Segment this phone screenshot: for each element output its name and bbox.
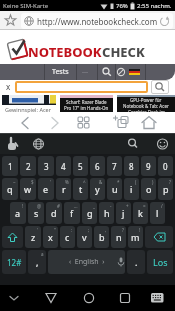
button[interactable]: 2 — [20, 156, 36, 176]
button[interactable] — [116, 64, 140, 80]
button[interactable]: 12# — [2, 250, 26, 274]
button[interactable] — [42, 288, 60, 308]
button[interactable]: 5 — [73, 156, 88, 176]
button[interactable]: y — [90, 178, 105, 200]
button[interactable]: o — [141, 178, 156, 200]
button[interactable]: g — [82, 202, 97, 224]
staticText: & — [99, 179, 103, 185]
button[interactable] — [98, 64, 115, 80]
button[interactable]: 3 — [38, 156, 54, 176]
button[interactable]: Gewinnspiel: Acer — [2, 95, 56, 112]
button[interactable] — [15, 81, 148, 93]
button[interactable] — [145, 226, 173, 248]
button[interactable]: m — [128, 226, 143, 248]
button[interactable] — [153, 134, 172, 154]
staticText: * — [117, 179, 120, 185]
staticText: # — [57, 203, 60, 209]
button[interactable]: q — [2, 178, 18, 200]
button[interactable]: t — [73, 178, 88, 200]
button[interactable] — [2, 134, 21, 154]
button[interactable]: r — [56, 178, 71, 200]
button[interactable]: f — [64, 202, 80, 224]
button[interactable]: , — [28, 250, 46, 274]
staticText: _ — [93, 203, 95, 209]
button[interactable] — [2, 226, 23, 248]
button[interactable] — [123, 134, 142, 154]
staticText: ) — [152, 179, 154, 185]
staticText: CHECK — [102, 43, 145, 61]
button[interactable]: 6 — [90, 156, 105, 176]
button[interactable]: j — [116, 202, 131, 224]
staticText: v — [82, 231, 87, 243]
staticText: = — [143, 203, 146, 209]
button[interactable] — [73, 113, 95, 133]
button[interactable]: 4 — [56, 156, 71, 176]
staticText: $ — [31, 179, 34, 185]
button[interactable]: l — [150, 202, 165, 224]
button[interactable] — [159, 16, 170, 27]
button[interactable] — [116, 288, 134, 308]
button[interactable]: p — [158, 178, 173, 200]
button[interactable] — [44, 113, 66, 133]
staticText: % — [65, 179, 69, 185]
button[interactable]: s — [28, 202, 44, 224]
staticText: Pro 17" im Hands-On — [64, 105, 109, 111]
staticText: , — [36, 256, 39, 268]
button[interactable]: 9 — [141, 156, 156, 176]
button[interactable]: . — [127, 250, 145, 274]
button[interactable]: n — [111, 226, 126, 248]
button[interactable]: w — [20, 178, 36, 200]
button[interactable]: u — [107, 178, 122, 200]
staticText: r — [62, 183, 66, 195]
button[interactable] — [148, 288, 166, 308]
staticText: 5 — [78, 161, 83, 172]
button[interactable] — [4, 14, 17, 27]
button[interactable] — [5, 288, 23, 308]
button[interactable]: GPU-Power für — [117, 95, 175, 112]
button[interactable]: ‹ English › — [48, 250, 125, 274]
staticText: 6 — [95, 161, 100, 172]
staticText: a — [15, 207, 21, 219]
button[interactable]: Tests — [45, 64, 76, 80]
staticText: ' — [37, 227, 39, 233]
button[interactable] — [14, 113, 36, 133]
staticText: 12# — [7, 257, 22, 268]
staticText: Los — [153, 256, 168, 268]
staticText: 4 — [61, 161, 66, 172]
button[interactable]: k — [133, 202, 148, 224]
button[interactable] — [151, 80, 169, 94]
button[interactable]: d — [46, 202, 62, 224]
button[interactable]: 1 — [2, 156, 18, 176]
button[interactable] — [111, 113, 133, 133]
button[interactable]: x — [43, 226, 58, 248]
staticText: " — [54, 227, 56, 233]
button[interactable]: h — [99, 202, 114, 224]
button[interactable]: http://www.notebookcheck.com — [21, 13, 173, 29]
button[interactable]: c — [60, 226, 75, 248]
staticText: i — [130, 183, 133, 195]
button[interactable]: NOTEBOOK — [28, 43, 145, 61]
staticText: 76% — [116, 2, 128, 10]
staticText: d — [51, 207, 57, 219]
button[interactable]: 7 — [107, 156, 122, 176]
staticText: t — [79, 183, 83, 195]
staticText: q — [7, 183, 13, 195]
button[interactable]: v — [77, 226, 92, 248]
staticText: ! — [139, 227, 141, 233]
staticText: 0 — [163, 161, 168, 172]
staticText: ? — [122, 227, 124, 233]
button[interactable]: e — [38, 178, 54, 200]
button[interactable]: b — [94, 226, 109, 248]
button[interactable] — [80, 288, 98, 308]
staticText: f — [70, 207, 74, 219]
button[interactable]: i — [124, 178, 139, 200]
button[interactable] — [29, 134, 48, 154]
button[interactable]: Los — [147, 250, 173, 274]
button[interactable]: z — [25, 226, 41, 248]
button[interactable]: 8 — [124, 156, 139, 176]
staticText: b — [99, 231, 105, 243]
button[interactable]: 0 — [158, 156, 173, 176]
button[interactable]: a — [10, 202, 26, 224]
button[interactable] — [138, 113, 160, 133]
button[interactable]: Scharf: Razer Blade — [60, 95, 113, 112]
